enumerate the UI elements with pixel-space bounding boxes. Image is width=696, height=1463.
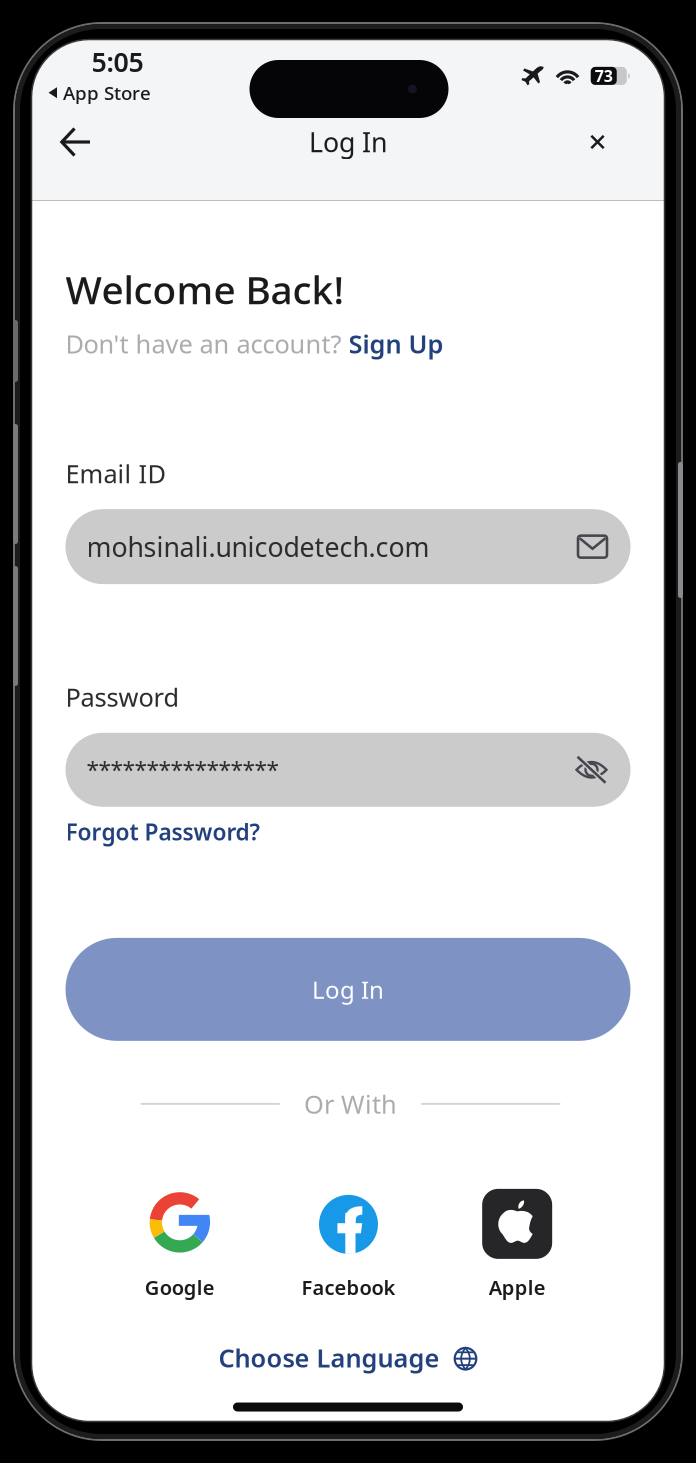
button[interactable]: Email — [576, 534, 608, 559]
staticText: Or With — [304, 1087, 397, 1121]
button[interactable]: Log In — [65, 938, 630, 1041]
button[interactable]: Apple — [433, 1192, 601, 1304]
staticText: Choose Language — [218, 1341, 439, 1374]
button[interactable]: Google — [95, 1192, 264, 1304]
staticText: Email ID — [65, 456, 165, 490]
staticText: Don't have an account? — [65, 327, 348, 360]
button[interactable]: Choose Language — [65, 1341, 630, 1374]
button[interactable]: Forgot Password? — [65, 817, 259, 847]
staticText: Log In — [312, 973, 384, 1005]
staticText: Apple — [489, 1274, 546, 1300]
staticText: Sign Up — [348, 327, 443, 360]
button[interactable]: Close — [573, 118, 621, 166]
staticText: Welcome Back! — [65, 263, 344, 315]
staticText: App Store — [63, 80, 151, 105]
staticText: Password — [65, 680, 179, 714]
staticText: Facebook — [301, 1274, 395, 1300]
staticText: Forgot Password? — [65, 817, 259, 847]
staticText: 5:05 — [91, 44, 143, 79]
staticText: Google — [145, 1274, 215, 1300]
staticText: **************** — [86, 755, 278, 785]
button[interactable]: Sign Up — [348, 327, 443, 360]
button[interactable]: Show password — [574, 755, 608, 784]
staticText: 73 — [595, 65, 613, 86]
button[interactable]: Facebook — [264, 1192, 433, 1304]
button[interactable]: Back — [49, 116, 101, 168]
staticText: Log In — [309, 124, 387, 160]
staticText: mohsinali.unicodetech.com — [86, 529, 429, 564]
